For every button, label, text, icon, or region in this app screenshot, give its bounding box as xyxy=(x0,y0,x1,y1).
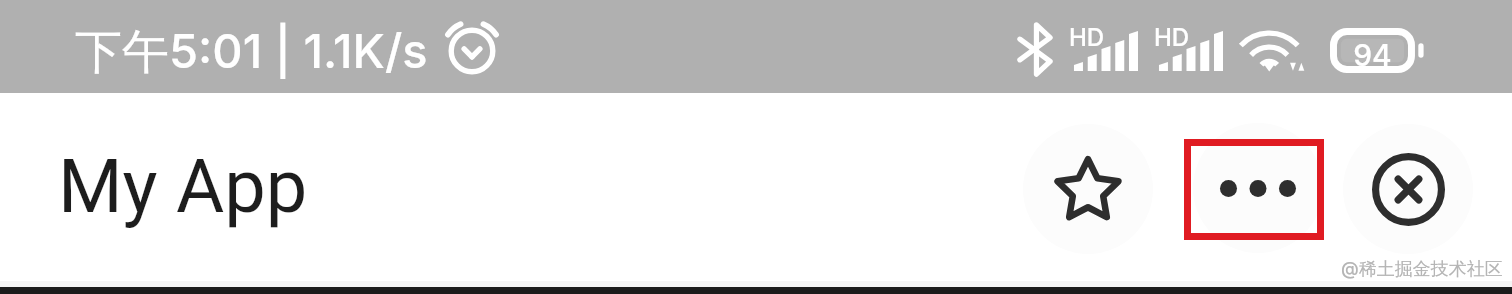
button[interactable]: Favorite xyxy=(1023,124,1153,254)
staticText: 94 xyxy=(1337,37,1408,73)
staticText: HD xyxy=(1069,23,1105,52)
staticText: @稀土掘金技术社区 xyxy=(1341,258,1503,281)
staticText: HD xyxy=(1154,23,1190,52)
button[interactable]: Close xyxy=(1343,124,1473,254)
button[interactable]: More options xyxy=(1193,123,1323,253)
staticText: 下午5:01 | 1.1K/s xyxy=(75,22,428,81)
staticText: My App xyxy=(58,143,308,230)
